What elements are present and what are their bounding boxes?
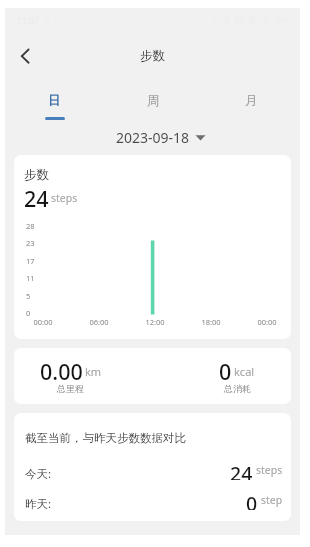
staticText: 步数 (140, 48, 165, 64)
staticText: 0 (26, 308, 40, 318)
staticText: 总消耗 (224, 383, 251, 394)
staticText: 月 (245, 93, 258, 109)
staticText: 昨天: (25, 496, 52, 512)
staticText: 周 (147, 93, 160, 109)
staticText: 5 (26, 291, 40, 301)
staticText: 0 (219, 357, 232, 386)
staticText: 18:00 (195, 317, 227, 327)
staticText: 总里程 (57, 383, 84, 394)
button[interactable]: 周 (104, 88, 202, 122)
button[interactable]: 0 (219, 348, 291, 404)
staticText: 步数 (24, 167, 49, 183)
staticText: 24 (230, 460, 253, 480)
staticText: 00:00 (251, 317, 283, 327)
button[interactable]: 2023-09-18 (5, 126, 300, 148)
staticText: km (85, 364, 102, 379)
staticText: 12:00 (139, 317, 171, 327)
staticText: 23 (26, 238, 40, 248)
staticText: 17 (26, 256, 40, 266)
staticText: 截至当前，与昨天步数数据对比 (25, 431, 186, 445)
staticText: 11 (26, 273, 40, 283)
staticText: 0 (246, 490, 258, 510)
button[interactable]: 日 (5, 88, 104, 122)
staticText: steps (256, 463, 283, 477)
button[interactable]: Back (9, 38, 47, 74)
staticText: 28 (26, 221, 40, 231)
button[interactable]: 今天: (25, 464, 283, 484)
button[interactable]: 昨天: (25, 494, 283, 514)
staticText: 0.00 (40, 357, 83, 386)
staticText: 日 (48, 93, 61, 109)
staticText: steps (51, 191, 78, 205)
staticText: 2023-09-18 (116, 128, 190, 147)
staticText: 06:00 (83, 317, 115, 327)
staticText: 24 (24, 184, 49, 213)
button[interactable]: 月 (202, 88, 300, 122)
button[interactable]: 0.00 (40, 348, 150, 404)
staticText: 00:00 (27, 317, 59, 327)
staticText: step (261, 493, 283, 507)
staticText: 今天: (25, 466, 52, 482)
staticText: kcal (234, 364, 255, 379)
